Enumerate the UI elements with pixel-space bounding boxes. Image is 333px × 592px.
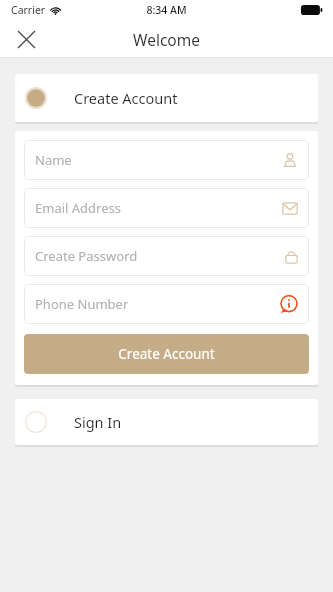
button[interactable]: Create Account	[15, 74, 318, 122]
staticText: Create Password	[35, 247, 138, 265]
button[interactable]: Phone Number	[24, 284, 309, 324]
staticText: Create Account	[74, 88, 178, 108]
staticText: Welcome	[133, 29, 200, 50]
button[interactable]: Close	[10, 23, 42, 55]
button[interactable]: Create Account	[24, 334, 309, 374]
staticText: Sign In	[74, 412, 122, 432]
staticText: Create Account	[118, 345, 215, 363]
staticText: Name	[35, 151, 72, 169]
button[interactable]: Email Address	[24, 188, 309, 228]
button[interactable]: Create Password	[24, 236, 309, 276]
button[interactable]: Name	[24, 140, 309, 180]
staticText: Carrier	[11, 3, 46, 17]
staticText: 8:34 AM	[146, 3, 187, 17]
staticText: Email Address	[35, 199, 121, 217]
staticText: Phone Number	[35, 295, 129, 313]
button[interactable]: Sign In	[15, 399, 318, 445]
